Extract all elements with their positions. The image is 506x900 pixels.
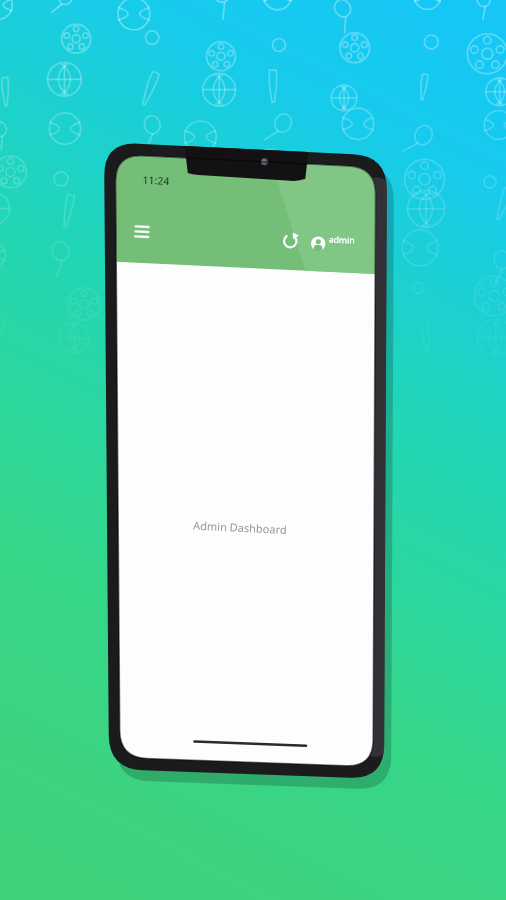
button[interactable]: admin account (310, 213, 362, 239)
button[interactable]: Open navigation menu (122, 212, 148, 238)
button[interactable]: Refresh (283, 214, 307, 238)
